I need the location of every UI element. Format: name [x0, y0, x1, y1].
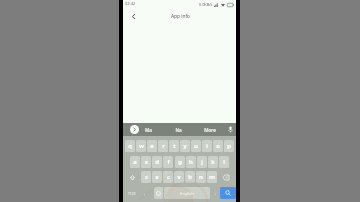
staticText: s [145, 158, 148, 166]
button[interactable]: x [152, 171, 162, 183]
staticText: e [150, 142, 154, 150]
button[interactable]: Back [128, 11, 139, 22]
staticText: Na [175, 127, 182, 133]
button[interactable]: Shift [125, 171, 139, 183]
button[interactable]: z [141, 171, 151, 183]
staticText: 02:42 [125, 1, 136, 6]
staticText: English [180, 191, 194, 196]
button[interactable]: u [191, 140, 201, 152]
staticText: k [211, 158, 215, 166]
staticText: y [183, 142, 187, 150]
staticText: t [173, 142, 176, 150]
button[interactable]: l [219, 156, 229, 168]
staticText: . [215, 190, 217, 197]
staticText: z [145, 173, 148, 181]
button[interactable]: f [163, 156, 173, 168]
staticText: l [223, 158, 225, 166]
staticText: a [133, 158, 137, 166]
button[interactable]: q [125, 140, 135, 152]
button[interactable]: i [202, 140, 212, 152]
button[interactable]: w [136, 140, 146, 152]
button[interactable]: b [185, 171, 195, 183]
staticText: p [227, 142, 231, 150]
staticText: d [155, 158, 159, 166]
staticText: More [204, 127, 216, 133]
button[interactable]: d [152, 156, 162, 168]
button[interactable]: ?123 [125, 187, 138, 199]
button[interactable]: r [158, 140, 168, 152]
button[interactable]: Na [168, 123, 188, 136]
button[interactable]: English [164, 187, 210, 199]
button[interactable]: t [169, 140, 179, 152]
button[interactable]: , [139, 187, 150, 199]
staticText: u [194, 142, 198, 150]
staticText: ?123 [128, 191, 136, 196]
staticText: h [189, 158, 193, 166]
button[interactable]: More [200, 123, 220, 136]
staticText: 0.0KB/s [199, 2, 213, 7]
staticText: q [128, 142, 132, 150]
button[interactable]: o [213, 140, 223, 152]
button[interactable]: e [147, 140, 157, 152]
staticText: r [162, 142, 165, 150]
button[interactable]: n [196, 171, 206, 183]
staticText: b [188, 173, 192, 181]
button[interactable]: s [141, 156, 151, 168]
staticText: Ma [145, 127, 152, 133]
staticText: f [167, 158, 170, 166]
staticText: w [139, 142, 144, 150]
button[interactable]: Voice input [226, 125, 235, 134]
staticText: c [167, 173, 170, 181]
button[interactable]: Expand suggestions [130, 125, 139, 134]
button[interactable]: c [163, 171, 173, 183]
button[interactable]: Emoji [154, 187, 163, 199]
staticText: g [178, 158, 182, 166]
button[interactable]: y [180, 140, 190, 152]
staticText: i [206, 142, 208, 150]
button[interactable]: Search [220, 187, 236, 199]
button[interactable]: h [186, 156, 196, 168]
button[interactable]: Backspace [219, 171, 233, 183]
button[interactable]: p [224, 140, 234, 152]
staticText: v [177, 173, 181, 181]
staticText: x [155, 173, 159, 181]
staticText: o [216, 142, 220, 150]
staticText: n [199, 173, 203, 181]
button[interactable]: Ma [138, 123, 158, 136]
button[interactable]: g [175, 156, 185, 168]
staticText: j [201, 158, 203, 166]
button[interactable]: v [174, 171, 184, 183]
staticText: m [209, 173, 215, 181]
staticText: , [144, 190, 146, 197]
button[interactable]: j [197, 156, 207, 168]
button[interactable]: m [207, 171, 217, 183]
button[interactable]: a [130, 156, 140, 168]
staticText: App info [171, 13, 190, 20]
button[interactable]: k [208, 156, 218, 168]
